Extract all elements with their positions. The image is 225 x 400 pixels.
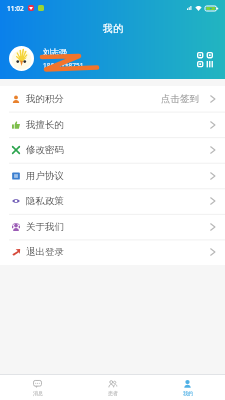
staticText: 11:02 xyxy=(7,4,24,13)
staticText: 186****8751 xyxy=(43,61,84,70)
button[interactable]: 我擅长的 xyxy=(0,112,225,138)
staticText: 我的积分 xyxy=(26,93,64,105)
button[interactable]: 我的积分 xyxy=(0,86,225,112)
button[interactable]: 隐私政策 xyxy=(0,188,225,214)
button[interactable]: 扫一扫 xyxy=(193,47,217,71)
button[interactable]: 患者 xyxy=(75,375,150,400)
staticText: 刘志强 xyxy=(43,47,67,57)
staticText: 点击签到 xyxy=(161,93,199,105)
button[interactable]: 关于我们 xyxy=(0,214,225,240)
button[interactable]: 我的 xyxy=(150,375,225,400)
button[interactable]: 消息 xyxy=(0,375,75,400)
staticText: 患者 xyxy=(108,390,118,396)
staticText: 用户协议 xyxy=(26,170,64,182)
staticText: 退出登录 xyxy=(26,246,64,258)
staticText: 消息 xyxy=(33,390,43,396)
button[interactable]: 修改密码 xyxy=(0,137,225,163)
button[interactable]: 退出登录 xyxy=(0,239,225,265)
button[interactable] xyxy=(9,46,34,71)
button[interactable]: 用户协议 xyxy=(0,163,225,189)
staticText: 我的 xyxy=(103,22,123,35)
staticText: 隐私政策 xyxy=(26,195,64,207)
staticText: 我擅长的 xyxy=(26,119,64,131)
staticText: 修改密码 xyxy=(26,144,64,156)
staticText: 我的 xyxy=(183,390,193,396)
staticText: 关于我们 xyxy=(26,221,64,233)
